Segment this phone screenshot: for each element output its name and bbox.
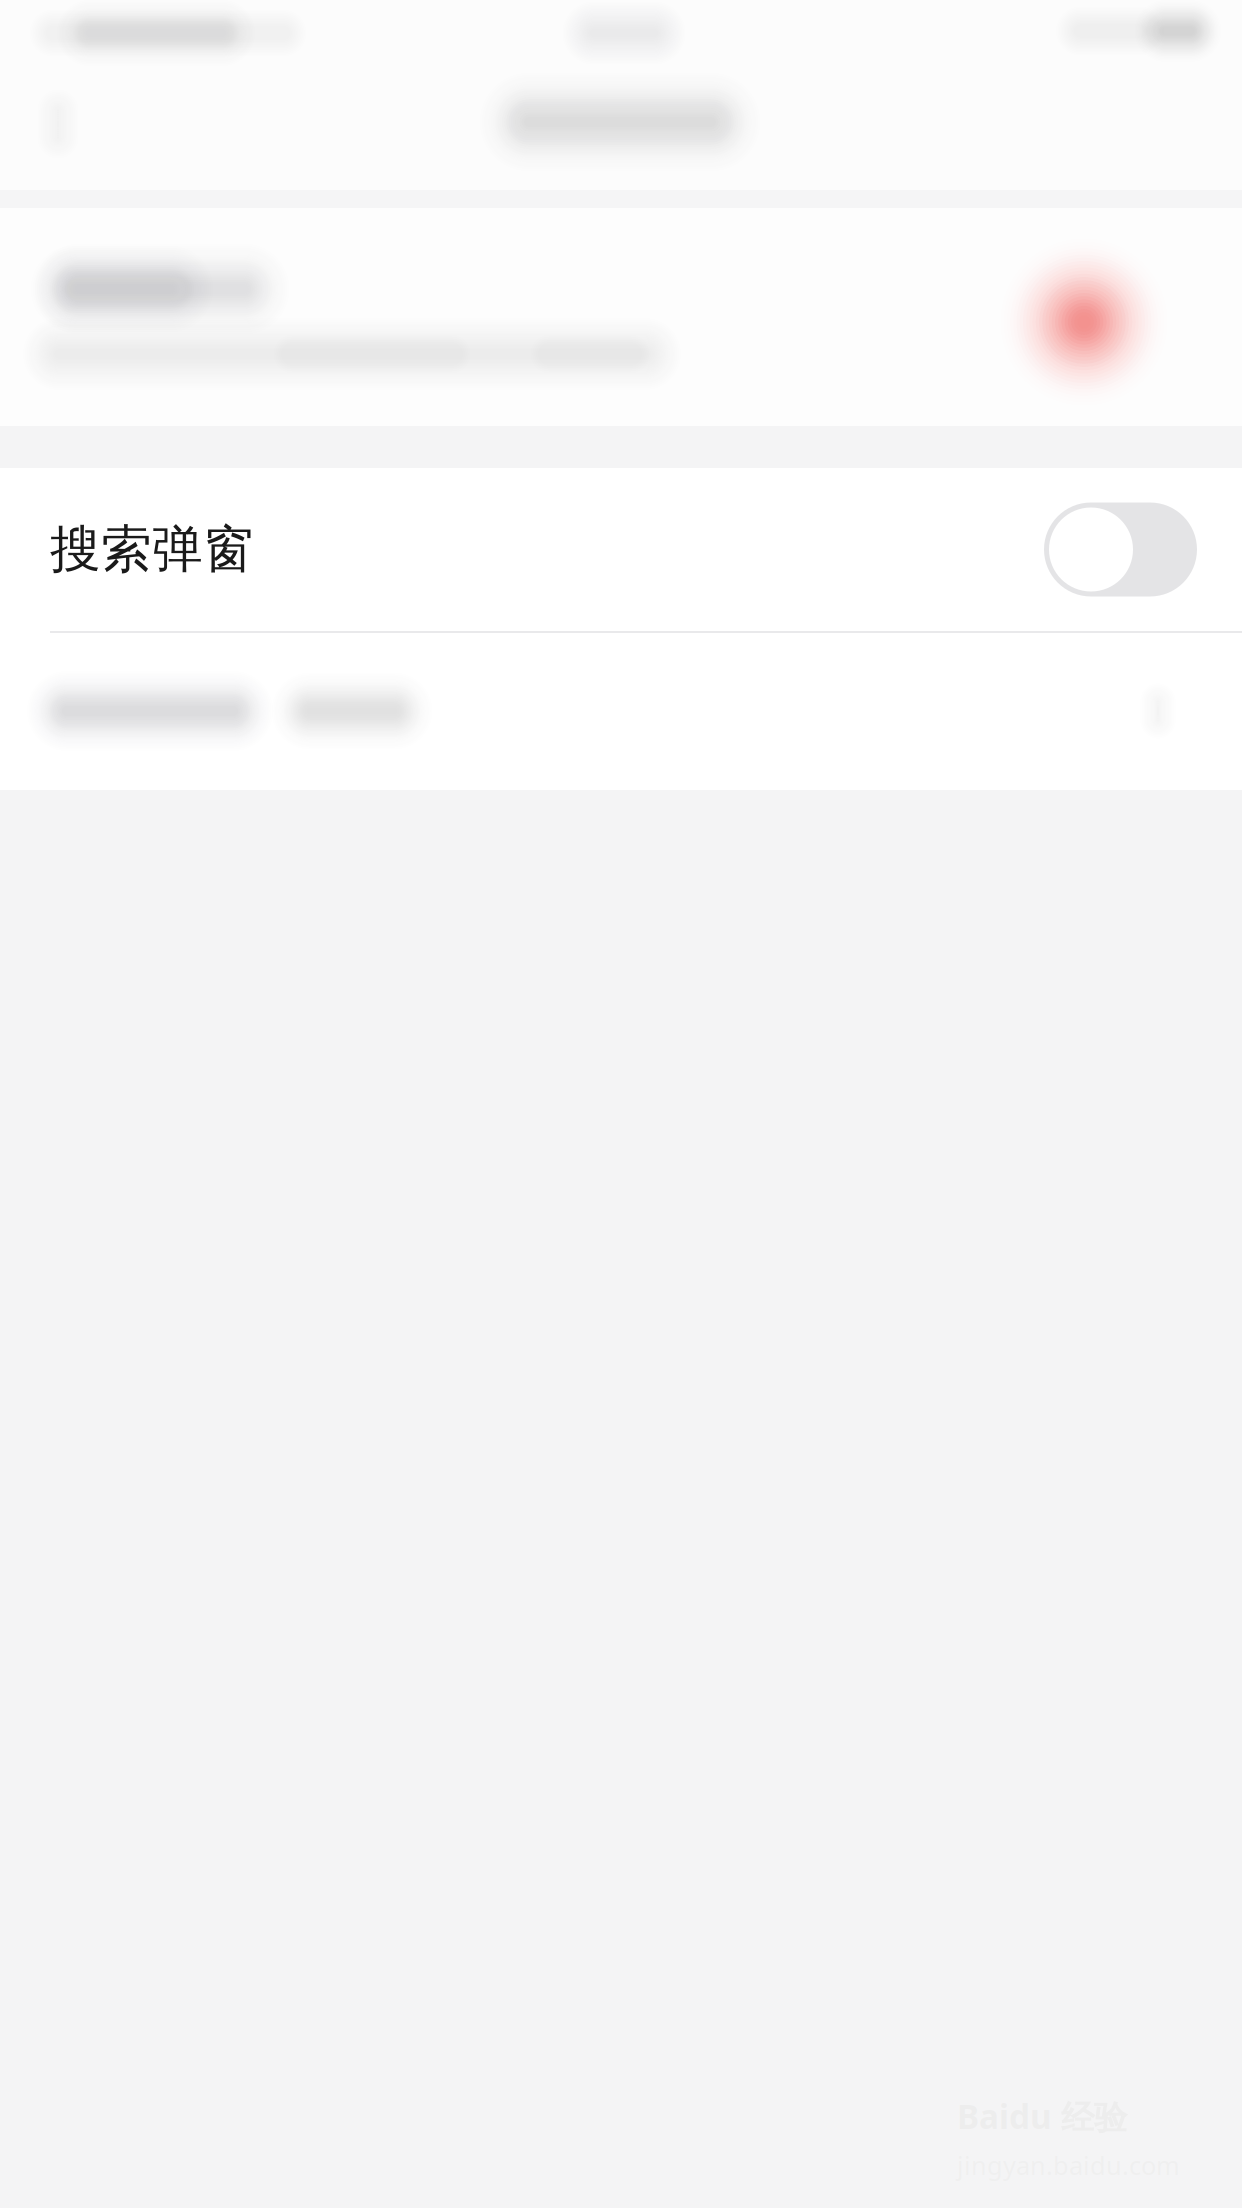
button[interactable]: Record <box>989 227 1179 417</box>
staticText: 搜索弹窗 <box>50 518 254 581</box>
button[interactable] <box>0 633 1242 789</box>
staticText: Baidu 经验 <box>957 2094 1127 2138</box>
button[interactable]: 搜索弹窗 <box>0 468 1242 631</box>
button[interactable]: Back <box>0 0 116 248</box>
